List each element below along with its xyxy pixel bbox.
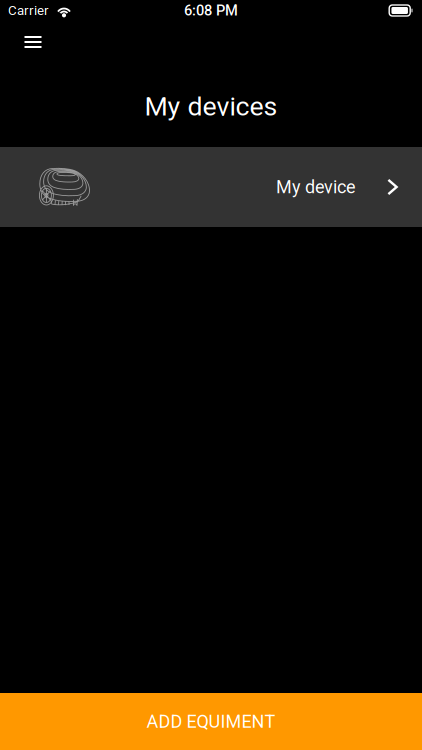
staticText: 6:08 PM <box>184 2 238 19</box>
staticText: My devices <box>144 91 277 122</box>
button[interactable]: ADD EQUIMENT <box>0 693 422 750</box>
staticText: Carrier <box>8 3 49 18</box>
staticText: ADD EQUIMENT <box>146 711 275 732</box>
button[interactable]: Menu <box>12 21 54 53</box>
button[interactable]: My device <box>0 147 422 227</box>
staticText: My device <box>276 176 356 198</box>
